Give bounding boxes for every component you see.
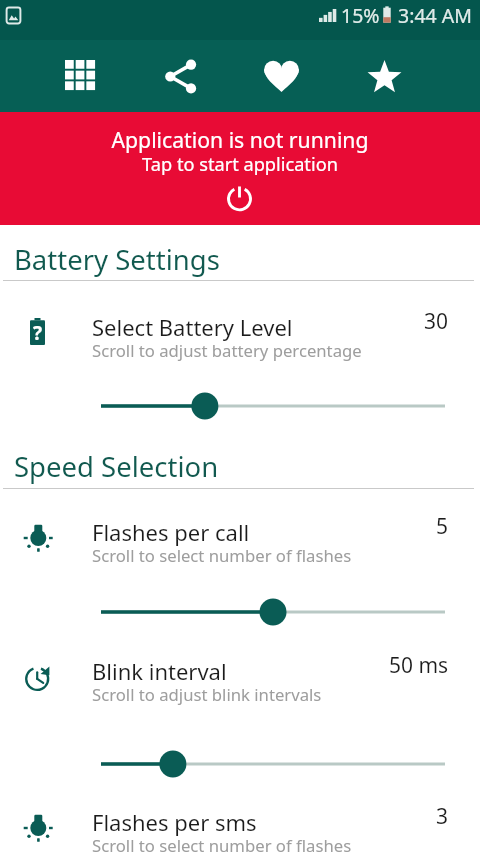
button[interactable]: Apps bbox=[53, 40, 109, 112]
staticText: ? bbox=[33, 320, 43, 346]
staticText: Flashes per sms bbox=[92, 807, 257, 837]
staticText: Blink interval bbox=[92, 656, 227, 686]
staticText: 30 bbox=[424, 307, 449, 336]
staticText: 3:44 AM bbox=[398, 2, 472, 29]
staticText: Scroll to adjust battery percentage bbox=[92, 339, 362, 362]
button[interactable]: Slider bbox=[88, 750, 458, 778]
button[interactable]: Slider bbox=[88, 598, 458, 626]
staticText: Flashes per call bbox=[92, 517, 250, 547]
staticText: Battery Settings bbox=[14, 241, 220, 278]
staticText: Select Battery Level bbox=[92, 312, 293, 342]
button[interactable] bbox=[0, 507, 480, 625]
staticText: Scroll to adjust blink intervals bbox=[92, 683, 322, 706]
staticText: 3 bbox=[436, 802, 449, 831]
button[interactable]: Favorite bbox=[253, 40, 309, 112]
staticText: Application is not running bbox=[0, 125, 480, 154]
staticText: 5 bbox=[436, 512, 449, 541]
button[interactable]: Slider bbox=[88, 392, 458, 420]
staticText: Speed Selection bbox=[14, 448, 219, 485]
button[interactable]: Application is not running bbox=[0, 112, 480, 225]
staticText: Scroll to select number of flashes bbox=[92, 834, 352, 854]
button[interactable] bbox=[0, 302, 480, 419]
button[interactable] bbox=[0, 797, 480, 854]
staticText: 50 ms bbox=[389, 651, 449, 680]
button[interactable] bbox=[0, 646, 480, 777]
staticText: Scroll to select number of flashes bbox=[92, 544, 352, 567]
staticText: 15% bbox=[341, 2, 380, 29]
button[interactable]: Rate bbox=[356, 40, 412, 112]
button[interactable]: Share bbox=[152, 40, 208, 112]
staticText: Tap to start application bbox=[0, 152, 480, 177]
